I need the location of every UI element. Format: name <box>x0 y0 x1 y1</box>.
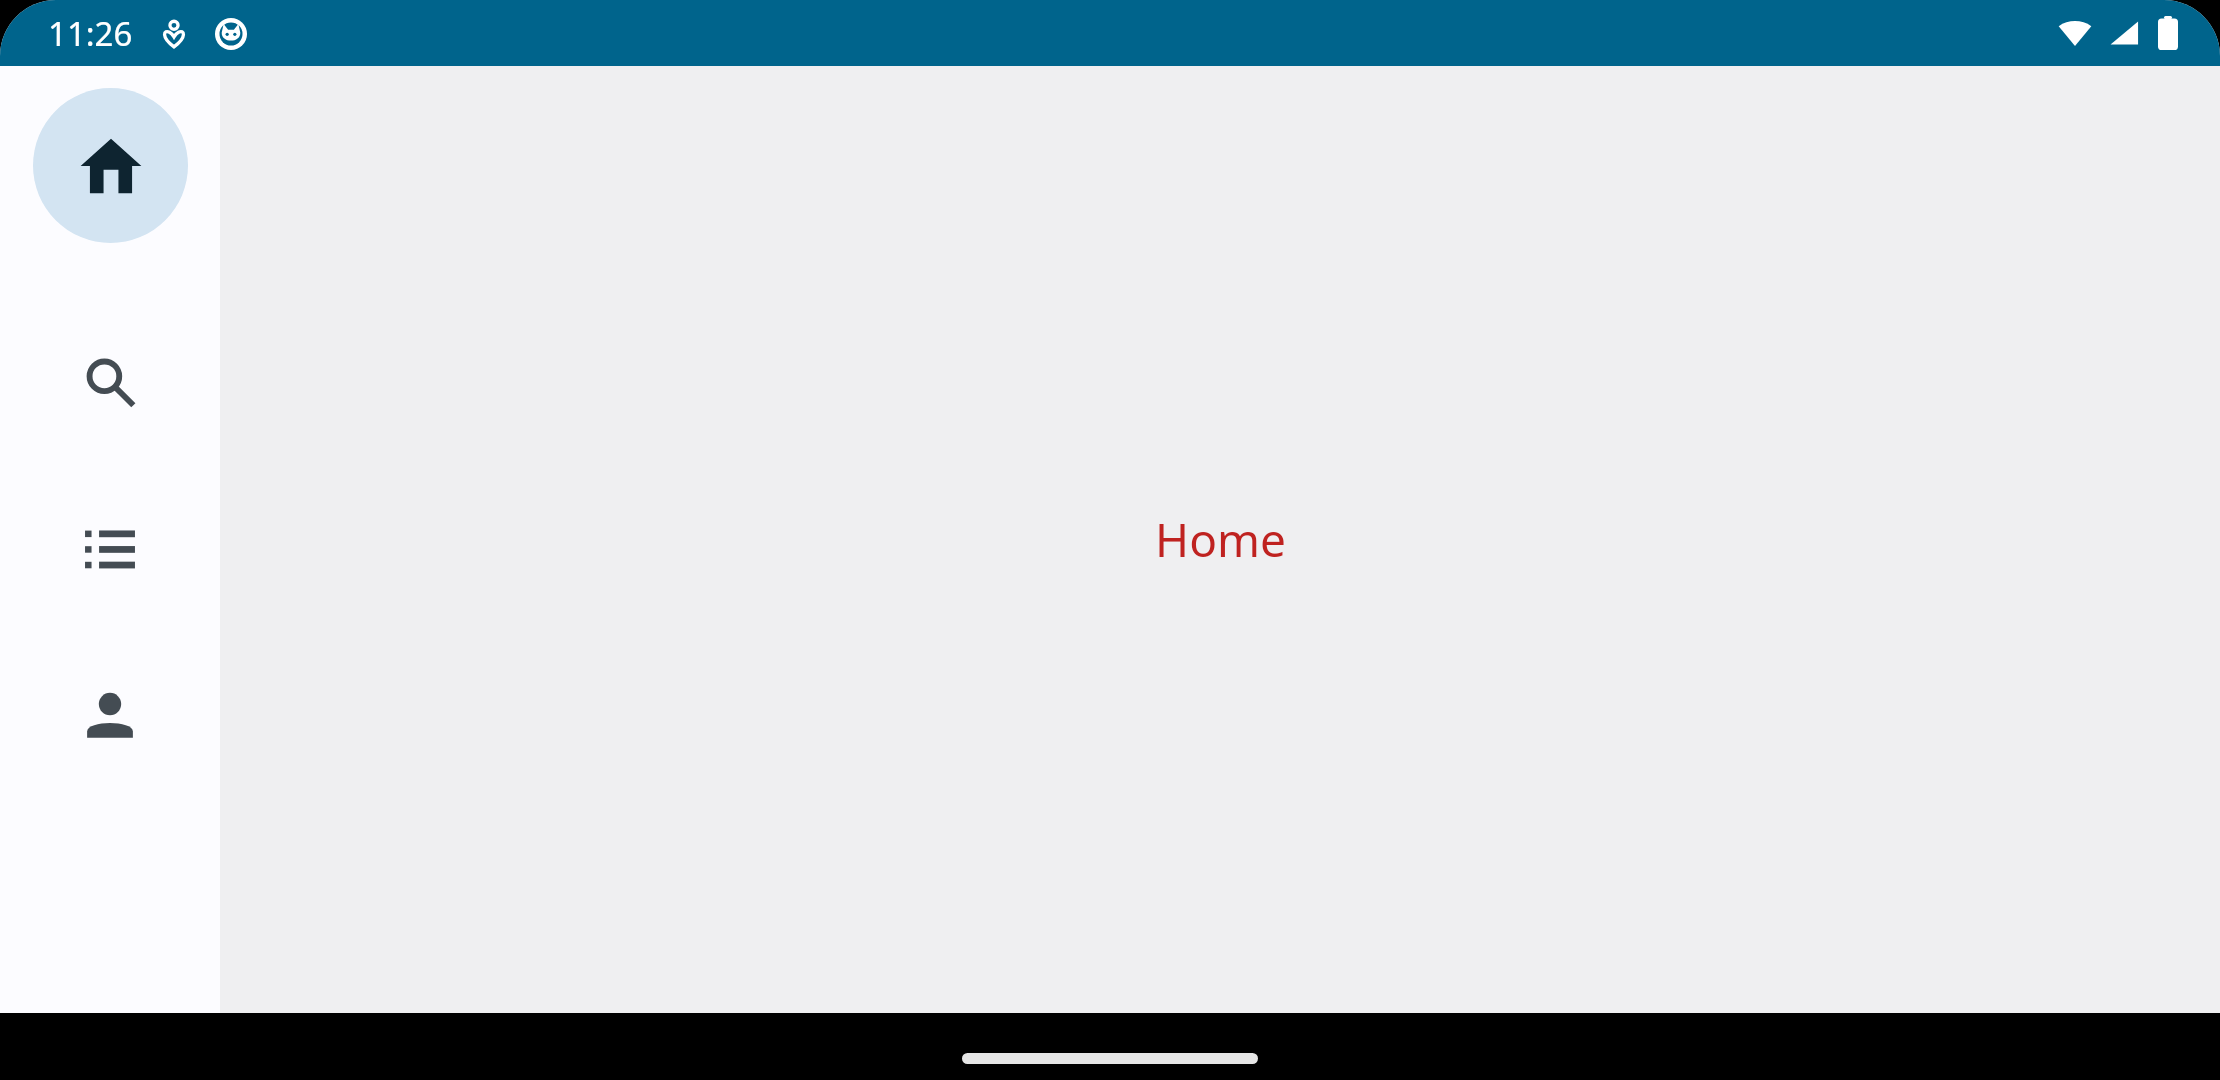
button[interactable]: Search <box>55 328 165 438</box>
staticText: Home <box>1155 508 1286 571</box>
button[interactable]: List <box>55 496 165 606</box>
button[interactable]: Home <box>33 88 188 243</box>
staticText: 11:26 <box>48 11 133 56</box>
button[interactable]: Profile <box>55 661 165 771</box>
